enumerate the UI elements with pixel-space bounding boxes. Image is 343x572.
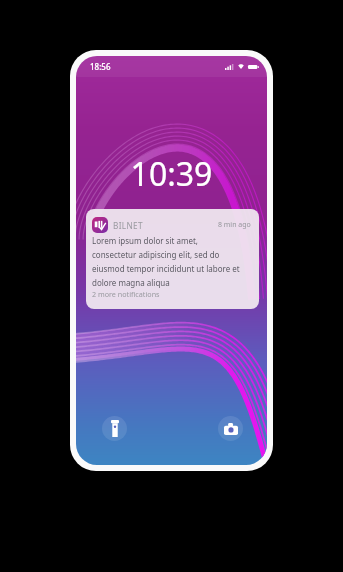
staticText: Lorem ipsum dolor sit amet, consectetur … bbox=[92, 235, 242, 288]
staticText: BILNET bbox=[113, 220, 143, 231]
staticText: 8 min ago bbox=[218, 220, 251, 230]
staticText: 18:56 bbox=[90, 61, 111, 72]
button[interactable]: Camera bbox=[218, 416, 243, 441]
button[interactable]: BILNET bbox=[86, 209, 259, 309]
button[interactable]: Flashlight bbox=[102, 416, 127, 441]
staticText: 10:39 bbox=[76, 152, 267, 196]
staticText: 2 more notifications bbox=[92, 289, 160, 299]
